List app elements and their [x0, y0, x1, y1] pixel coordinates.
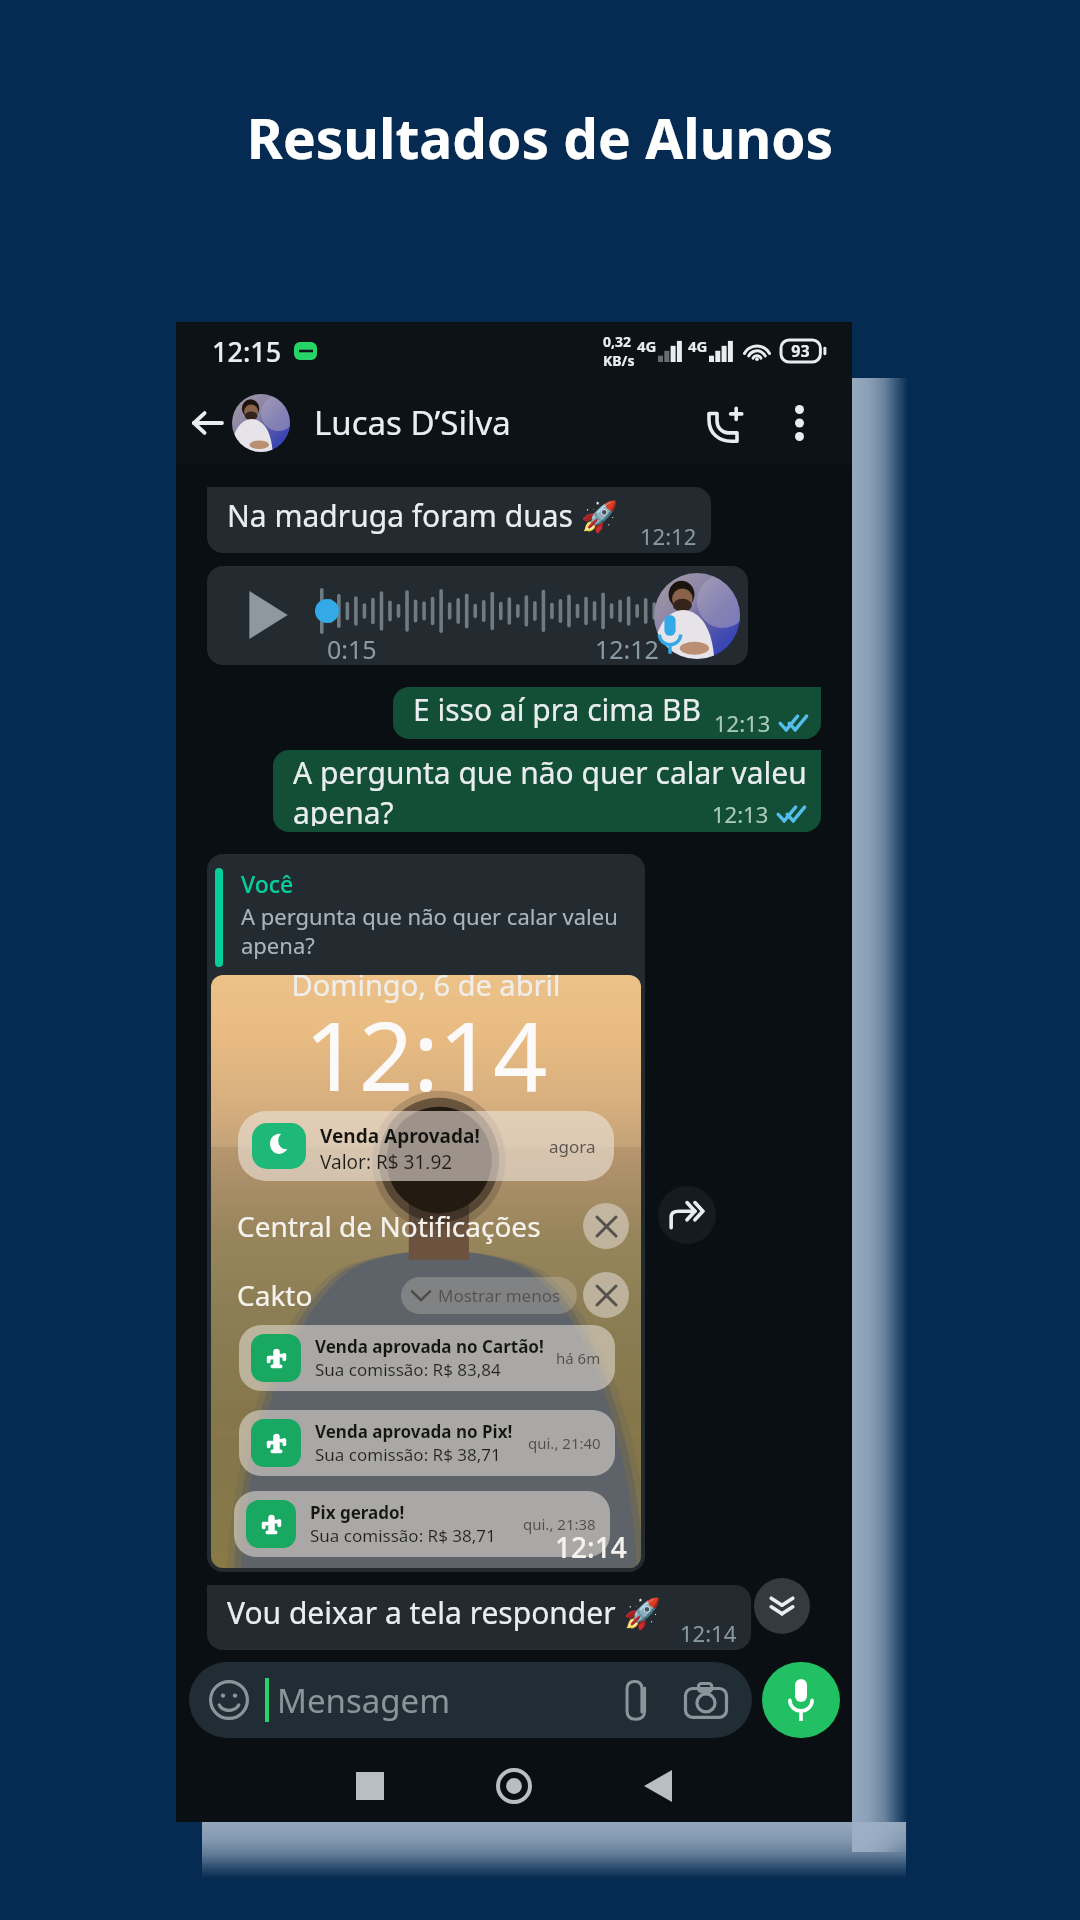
- staticText: 12:12: [640, 521, 697, 551]
- staticText: 12:14: [211, 989, 641, 1118]
- button[interactable]: Back: [628, 1756, 688, 1816]
- button[interactable]: Camera: [682, 1676, 730, 1724]
- staticText: Valor: R$ 31,92: [320, 1149, 453, 1169]
- button[interactable]: Dismiss: [583, 1203, 629, 1249]
- button[interactable]: More options: [776, 400, 822, 446]
- staticText: Vou deixar a tela responder 🚀: [227, 1592, 661, 1633]
- button[interactable]: Venda Aprovada!: [238, 1111, 614, 1181]
- button[interactable]: Add call: [698, 396, 752, 450]
- button[interactable]: Dismiss: [583, 1272, 629, 1318]
- staticText: 93: [780, 340, 821, 362]
- staticText: Sua comissão: R$ 83,84: [315, 1358, 501, 1381]
- staticText: Você: [241, 868, 294, 899]
- button[interactable]: Scroll to bottom: [754, 1578, 810, 1634]
- button[interactable]: A pergunta que não quer calar valeu apen…: [273, 750, 821, 832]
- button[interactable]: Pix gerado!: [234, 1491, 610, 1557]
- button[interactable]: Attach: [614, 1678, 658, 1722]
- button[interactable]: Recents: [340, 1756, 400, 1816]
- staticText: 12:14: [555, 1528, 627, 1566]
- staticText: Venda aprovada no Pix!: [315, 1420, 513, 1443]
- staticText: 4G: [688, 336, 708, 356]
- staticText: Lucas D’Silva: [314, 400, 511, 445]
- staticText: 12:13: [714, 708, 771, 738]
- staticText: Sua comissão: R$ 38,71: [315, 1443, 501, 1466]
- staticText: Venda aprovada no Cartão!: [315, 1335, 544, 1358]
- staticText: Mensagem: [277, 1678, 451, 1723]
- staticText: 0:15: [327, 632, 377, 665]
- button[interactable]: Mensagem: [189, 1662, 752, 1738]
- button[interactable]: E isso aí pra cima BB: [393, 687, 821, 739]
- staticText: 4G: [637, 336, 657, 356]
- staticText: qui., 21:38: [523, 1514, 596, 1534]
- staticText: Venda Aprovada!: [320, 1123, 480, 1149]
- staticText: Sua comissão: R$ 38,71: [310, 1524, 496, 1547]
- button[interactable]: Vou deixar a tela responder 🚀: [207, 1585, 751, 1650]
- staticText: Resultados de Alunos: [0, 100, 1080, 175]
- staticText: qui., 21:40: [528, 1433, 601, 1453]
- button[interactable]: Venda aprovada no Pix!: [239, 1410, 615, 1476]
- staticText: Domingo, 6 de abril: [211, 975, 641, 1004]
- button[interactable]: Home: [484, 1756, 544, 1816]
- staticText: A pergunta que não quer calar valeu apen…: [241, 901, 618, 960]
- button[interactable]: Na madruga foram duas 🚀: [207, 487, 711, 553]
- staticText: Cakto: [237, 1276, 313, 1314]
- staticText: 12:13: [712, 799, 769, 829]
- staticText: KB/s: [603, 351, 635, 370]
- staticText: Mostrar menos: [438, 1284, 561, 1307]
- staticText: Pix gerado!: [310, 1501, 405, 1524]
- staticText: Na madruga foram duas 🚀: [227, 495, 619, 536]
- staticText: 12:12: [595, 632, 659, 665]
- staticText: 12:14: [680, 1618, 737, 1648]
- staticText: há 6m: [556, 1348, 601, 1368]
- staticText: E isso aí pra cima BB: [413, 689, 701, 730]
- button[interactable]: Play voice message: [207, 566, 748, 665]
- staticText: Central de Notificações: [237, 1207, 541, 1245]
- button[interactable]: Record voice message: [762, 1662, 840, 1738]
- button[interactable]: Mostrar menos: [401, 1277, 577, 1314]
- staticText: 0,32: [603, 332, 632, 351]
- button[interactable]: Back: [182, 398, 232, 448]
- staticText: agora: [549, 1135, 596, 1158]
- staticText: A pergunta que não quer calar valeu apen…: [293, 752, 807, 826]
- button[interactable]: Forward: [658, 1186, 716, 1244]
- button[interactable]: Venda aprovada no Cartão!: [239, 1325, 615, 1391]
- button[interactable]: Photo message: [207, 854, 645, 1572]
- staticText: 12:15: [212, 333, 282, 370]
